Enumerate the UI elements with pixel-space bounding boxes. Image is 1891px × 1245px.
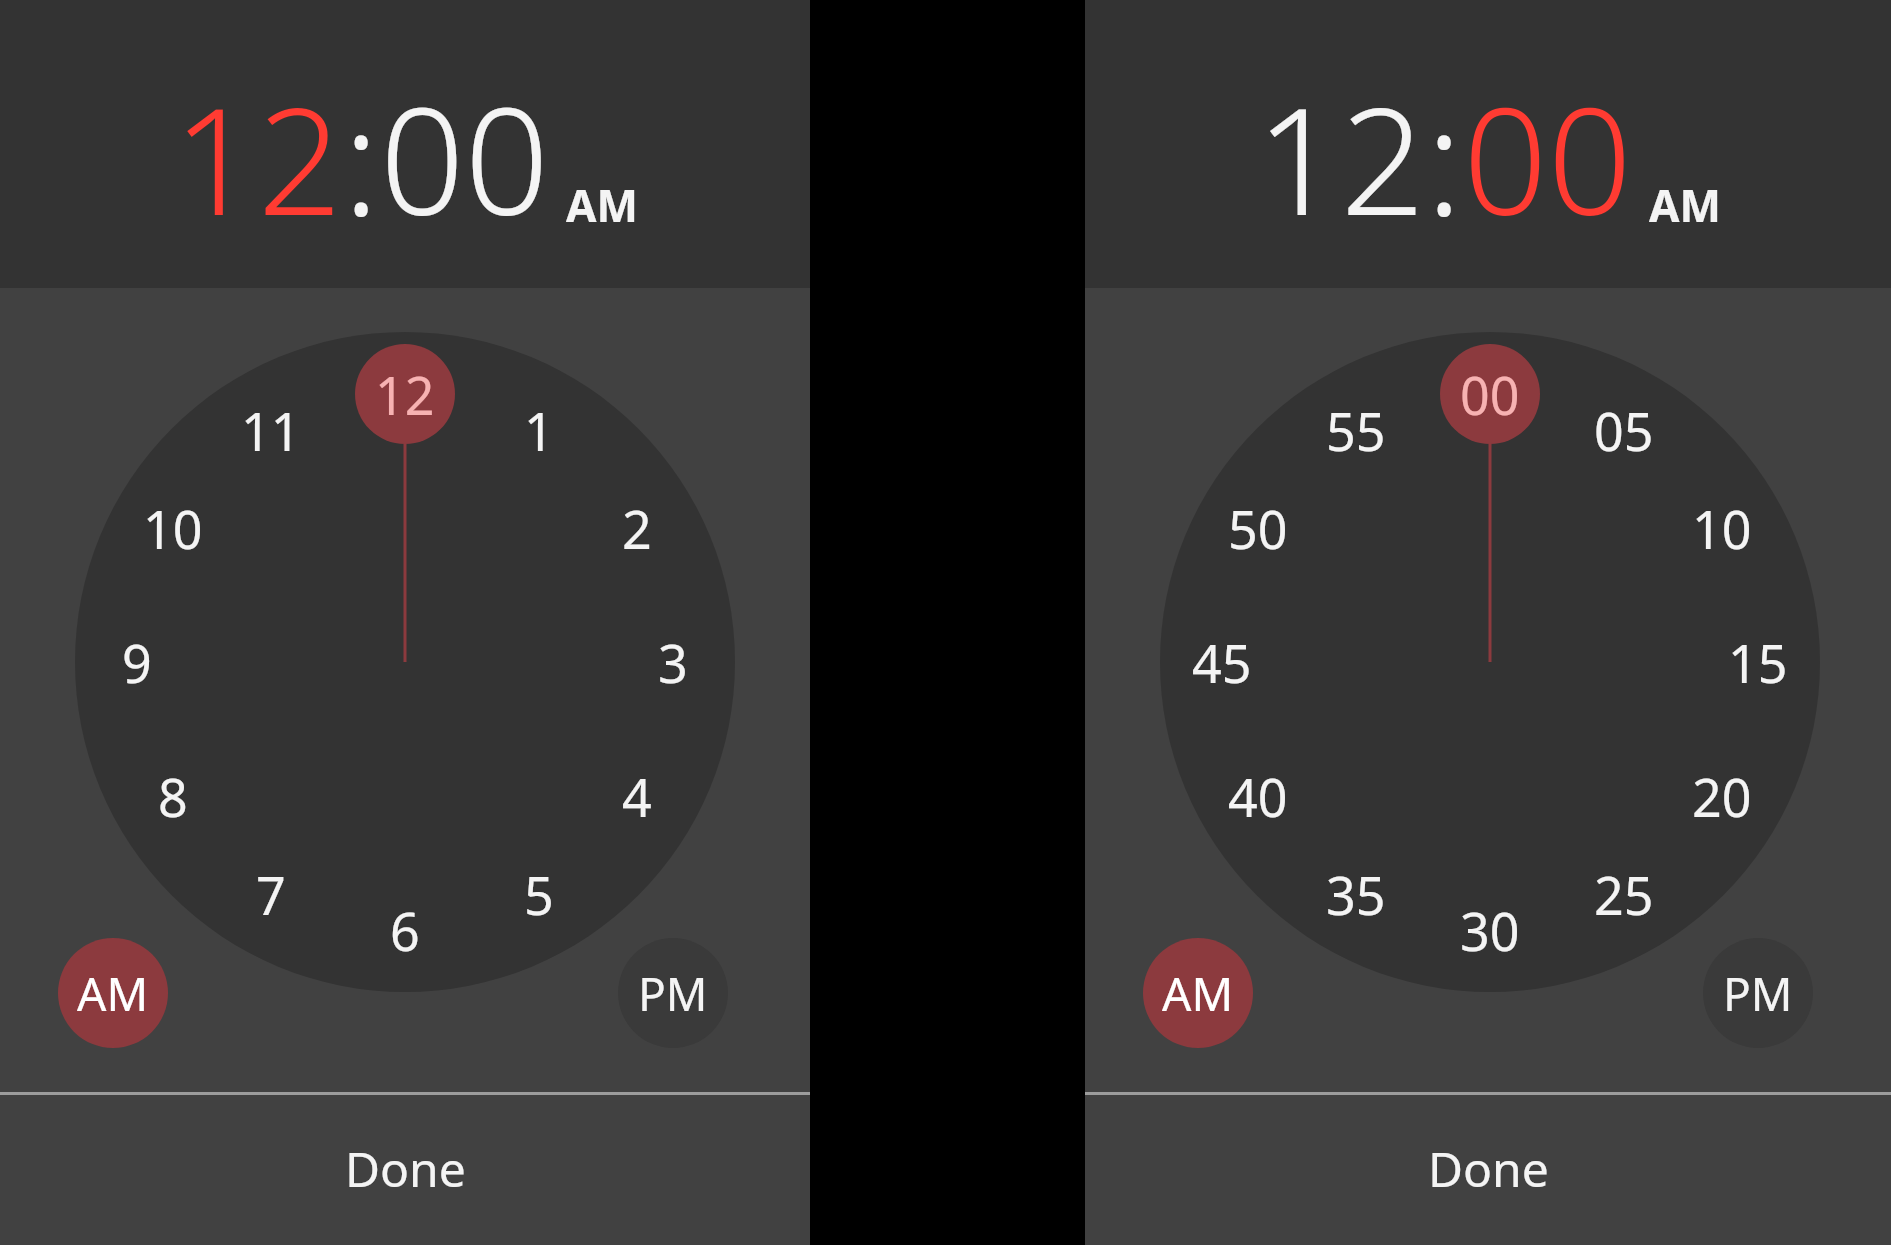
- button[interactable]: 30: [1435, 885, 1545, 975]
- staticText: 10: [143, 493, 203, 564]
- staticText: AM: [77, 962, 149, 1025]
- staticText: 45: [1192, 627, 1252, 698]
- button[interactable]: 12: [1256, 57, 1426, 259]
- button[interactable]: PM: [1703, 938, 1813, 1048]
- staticText: :: [343, 57, 380, 259]
- button[interactable]: 3: [618, 617, 728, 707]
- staticText: 9: [122, 627, 152, 698]
- staticText: 20: [1692, 761, 1752, 832]
- button[interactable]: 00: [1435, 349, 1545, 439]
- staticText: 40: [1228, 761, 1288, 832]
- button[interactable]: 05: [1569, 385, 1679, 475]
- button[interactable]: AM: [58, 938, 168, 1048]
- staticText: 5: [524, 859, 554, 930]
- button[interactable]: 55: [1301, 385, 1411, 475]
- button[interactable]: 6: [350, 885, 460, 975]
- button[interactable]: 20: [1667, 751, 1777, 841]
- button[interactable]: 7: [216, 849, 326, 939]
- button[interactable]: 11: [216, 385, 326, 475]
- staticText: PM: [638, 962, 708, 1025]
- button[interactable]: Done: [0, 1092, 810, 1245]
- staticText: 05: [1594, 395, 1654, 466]
- button[interactable]: 12: [350, 349, 460, 439]
- button[interactable]: Done: [1085, 1092, 1891, 1245]
- staticText: 10: [1692, 493, 1752, 564]
- button[interactable]: 2: [582, 483, 692, 573]
- button[interactable]: 40: [1203, 751, 1313, 841]
- button[interactable]: 45: [1167, 617, 1277, 707]
- staticText: Done: [345, 1136, 466, 1201]
- staticText: 55: [1326, 395, 1386, 466]
- staticText: 3: [658, 627, 688, 698]
- staticText: 8: [158, 761, 188, 832]
- staticText: Done: [1428, 1136, 1549, 1201]
- button[interactable]: PM: [618, 938, 728, 1048]
- button[interactable]: 5: [484, 849, 594, 939]
- button[interactable]: 10: [118, 483, 228, 573]
- staticText: 25: [1594, 859, 1654, 930]
- button[interactable]: AM: [1649, 175, 1721, 235]
- staticText: 4: [622, 761, 652, 832]
- staticText: 11: [241, 395, 301, 466]
- staticText: 15: [1728, 627, 1788, 698]
- button[interactable]: 50: [1203, 483, 1313, 573]
- staticText: 00: [1460, 359, 1520, 430]
- staticText: 6: [390, 895, 420, 966]
- staticText: 7: [256, 859, 286, 930]
- staticText: PM: [1723, 962, 1793, 1025]
- staticText: 12: [375, 359, 435, 430]
- button[interactable]: 00: [1463, 57, 1633, 259]
- staticText: 50: [1228, 493, 1288, 564]
- staticText: 35: [1326, 859, 1386, 930]
- staticText: 2: [622, 493, 652, 564]
- button[interactable]: AM: [566, 175, 638, 235]
- button[interactable]: 4: [582, 751, 692, 841]
- staticText: :: [1426, 57, 1463, 259]
- button[interactable]: 25: [1569, 849, 1679, 939]
- button[interactable]: 8: [118, 751, 228, 841]
- button[interactable]: 35: [1301, 849, 1411, 939]
- button[interactable]: 12: [173, 57, 343, 259]
- staticText: 1: [524, 395, 554, 466]
- button[interactable]: 10: [1667, 483, 1777, 573]
- staticText: 30: [1460, 895, 1520, 966]
- staticText: AM: [1162, 962, 1234, 1025]
- button[interactable]: 1: [484, 385, 594, 475]
- button[interactable]: 00: [380, 57, 550, 259]
- button[interactable]: 9: [82, 617, 192, 707]
- button[interactable]: AM: [1143, 938, 1253, 1048]
- button[interactable]: 15: [1703, 617, 1813, 707]
